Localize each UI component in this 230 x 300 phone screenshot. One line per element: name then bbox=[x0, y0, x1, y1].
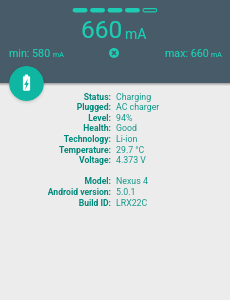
staticText: 660 bbox=[81, 15, 123, 44]
staticText: mA bbox=[125, 26, 147, 42]
staticText: AC charger bbox=[116, 102, 160, 112]
staticText: Plugged: bbox=[0, 102, 111, 112]
staticText: mA bbox=[211, 51, 222, 59]
staticText: Charging bbox=[116, 92, 152, 102]
staticText: min: 580 bbox=[9, 47, 51, 60]
staticText: Voltage: bbox=[0, 155, 111, 165]
staticText: Li-ion bbox=[116, 134, 138, 144]
button[interactable]: Battery charging bbox=[9, 66, 44, 101]
staticText: Model: bbox=[0, 176, 111, 186]
staticText: Temperature: bbox=[0, 145, 111, 155]
staticText: Good bbox=[116, 123, 137, 133]
staticText: Technology: bbox=[0, 134, 111, 144]
staticText: Nexus 4 bbox=[116, 176, 148, 186]
staticText: 5.0.1 bbox=[116, 187, 136, 197]
staticText: LRX22C bbox=[116, 198, 148, 208]
staticText: 4.373 V bbox=[116, 155, 146, 165]
button[interactable]: Reset min and max bbox=[107, 46, 121, 60]
staticText: Health: bbox=[0, 123, 111, 133]
staticText: Build ID: bbox=[0, 198, 111, 208]
staticText: mA bbox=[53, 51, 64, 59]
staticText: 94% bbox=[116, 113, 133, 123]
staticText: Level: bbox=[0, 113, 111, 123]
staticText: Status: bbox=[0, 92, 111, 102]
staticText: max: 660 bbox=[165, 47, 209, 60]
staticText: 29.7 °C bbox=[116, 145, 145, 155]
staticText: Android version: bbox=[0, 187, 111, 197]
